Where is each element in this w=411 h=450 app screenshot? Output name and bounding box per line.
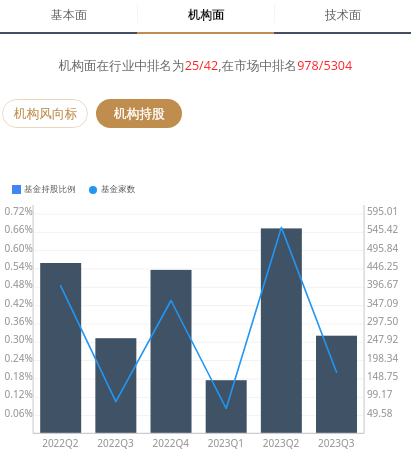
staticText: 基本面 — [51, 7, 87, 22]
button[interactable]: 机构持股 — [96, 99, 182, 128]
staticText: 机构风向标 — [14, 106, 77, 122]
staticText: 机构面在行业中排名为25/42,在市场中排名978/5304 — [0, 57, 411, 74]
button[interactable]: 技术面 — [274, 0, 411, 28]
button[interactable]: 基本面 — [0, 0, 137, 28]
staticText: 技术面 — [325, 7, 361, 22]
staticText: 基金家数 — [101, 184, 136, 195]
staticText: 机构面 — [188, 7, 224, 22]
button[interactable]: 机构面 — [137, 0, 274, 28]
staticText: 机构持股 — [114, 106, 165, 122]
button[interactable]: 机构风向标 — [2, 99, 88, 128]
staticText: 基金持股比例 — [24, 184, 76, 195]
